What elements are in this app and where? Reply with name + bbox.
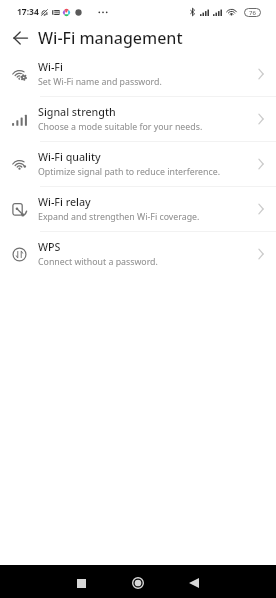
- button[interactable]: Wi-Fi quality: [0, 142, 276, 186]
- staticText: WPS: [38, 240, 61, 255]
- staticText: Optimize signal path to reduce interfere…: [38, 166, 221, 178]
- staticText: Wi-Fi: [38, 60, 63, 75]
- staticText: 17:34: [17, 6, 39, 18]
- button[interactable]: Back: [6, 24, 34, 52]
- button[interactable]: Recent apps: [70, 572, 92, 594]
- button[interactable]: Wi-Fi: [0, 52, 276, 96]
- staticText: Set Wi-Fi name and password.: [38, 76, 162, 88]
- staticText: Connect without a password.: [38, 256, 158, 268]
- button[interactable]: Home: [127, 572, 149, 594]
- button[interactable]: WPS: [0, 232, 276, 276]
- button[interactable]: Wi-Fi relay: [0, 187, 276, 231]
- staticText: Wi-Fi quality: [38, 150, 101, 165]
- staticText: 76: [249, 9, 256, 17]
- staticText: Expand and strengthen Wi-Fi coverage.: [38, 211, 200, 223]
- staticText: Wi-Fi management: [38, 27, 183, 49]
- button[interactable]: Signal strength: [0, 97, 276, 141]
- staticText: Signal strength: [38, 105, 116, 120]
- staticText: Wi-Fi relay: [38, 195, 91, 210]
- staticText: Choose a mode suitable for your needs.: [38, 121, 203, 133]
- button[interactable]: Back: [183, 572, 205, 594]
